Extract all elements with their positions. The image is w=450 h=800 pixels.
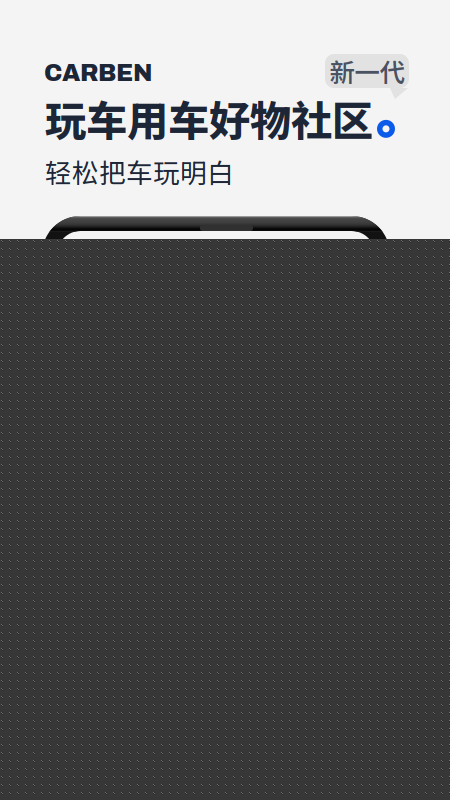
staticText: 轻松把车玩明白 [45,152,234,191]
staticText: 玩车用车好物社区 [45,88,373,148]
staticText: CARBEN [44,60,153,86]
button[interactable]: 新一代 [325,54,409,99]
staticText: 新一代 [329,53,404,89]
